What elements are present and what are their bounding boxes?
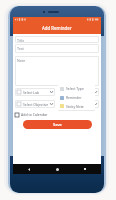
staticText: Sticky Note: [66, 104, 84, 109]
staticText: Text: [17, 46, 24, 51]
button[interactable]: [58, 100, 99, 108]
button[interactable]: Back: [26, 166, 32, 172]
button[interactable]: Note: [15, 56, 99, 86]
staticText: Select Lab: [23, 90, 50, 95]
button[interactable]: Save: [23, 120, 92, 129]
button[interactable]: Title: [15, 36, 99, 43]
staticText: Save: [53, 122, 62, 127]
button[interactable]: Select Lab: [15, 88, 55, 96]
staticText: Select Type: [66, 90, 94, 95]
button[interactable]: Reminder: [58, 93, 95, 102]
staticText: Add Reminder: [42, 25, 72, 31]
staticText: Select Objective: [23, 102, 50, 107]
button[interactable]: Home: [54, 166, 60, 172]
button[interactable]: Select Type: [58, 88, 99, 96]
button[interactable]: Select Type: [58, 84, 95, 93]
button[interactable]: Add to Calendar: [15, 112, 99, 117]
staticText: Add to Calendar: [21, 112, 48, 117]
staticText: Reminder: [66, 95, 82, 100]
staticText: Title: [17, 38, 25, 43]
staticText: Select Type: [66, 86, 84, 91]
staticText: Note: [17, 58, 26, 63]
staticText: [66, 102, 94, 107]
button[interactable]: Sticky Note: [58, 102, 95, 110]
button[interactable]: Select Objective: [15, 100, 55, 108]
button[interactable]: Recents: [82, 166, 88, 172]
button[interactable]: Add Reminder: [13, 22, 101, 34]
button[interactable]: Text: [15, 44, 99, 53]
